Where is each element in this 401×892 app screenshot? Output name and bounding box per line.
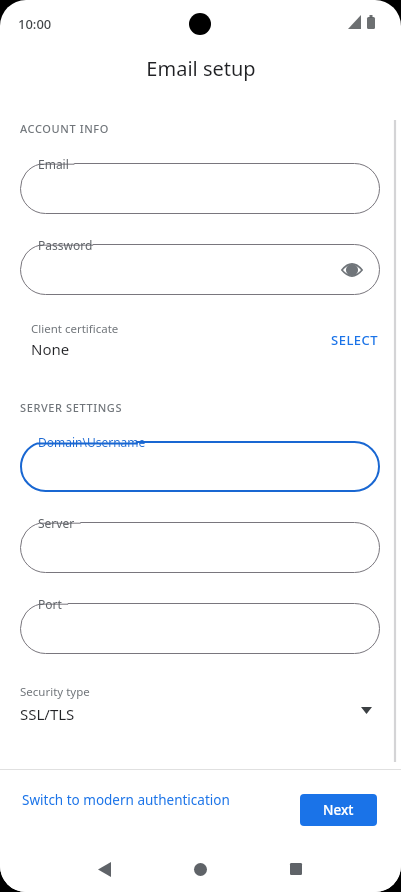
button[interactable]: Server: [20, 522, 380, 573]
staticText: Server: [38, 515, 75, 531]
staticText: ACCOUNT INFO: [20, 121, 109, 136]
staticText: Security type: [20, 684, 90, 700]
button[interactable]: Port: [20, 603, 380, 654]
button[interactable]: Email: [20, 163, 380, 214]
button[interactable]: Password: [20, 244, 380, 295]
staticText: Email: [38, 156, 69, 172]
staticText: SELECT: [331, 331, 379, 349]
staticText: Client certificate: [31, 321, 119, 337]
button[interactable]: Next: [300, 794, 377, 826]
staticText: Switch to modern authentication: [22, 791, 230, 809]
staticText: SSL/TLS: [20, 704, 75, 724]
button[interactable]: Switch to modern authentication: [10, 782, 242, 818]
button[interactable]: Home: [182, 851, 218, 887]
button[interactable]: Security type: [0, 680, 401, 728]
staticText: Port: [38, 596, 62, 612]
staticText: 10:00: [18, 15, 52, 33]
button[interactable]: Client certificate: [0, 318, 401, 362]
button[interactable]: Domain\Username: [20, 441, 380, 492]
staticText: Password: [38, 237, 93, 253]
other: Select security type: [359, 703, 373, 717]
button[interactable]: Back: [86, 851, 122, 887]
staticText: Email setup: [146, 55, 256, 82]
button[interactable]: Show password: [332, 250, 372, 290]
staticText: Domain\Username: [38, 434, 146, 450]
staticText: None: [31, 339, 70, 359]
staticText: Next: [323, 801, 354, 819]
button[interactable]: Recent apps: [278, 851, 314, 887]
staticText: SERVER SETTINGS: [20, 400, 123, 415]
